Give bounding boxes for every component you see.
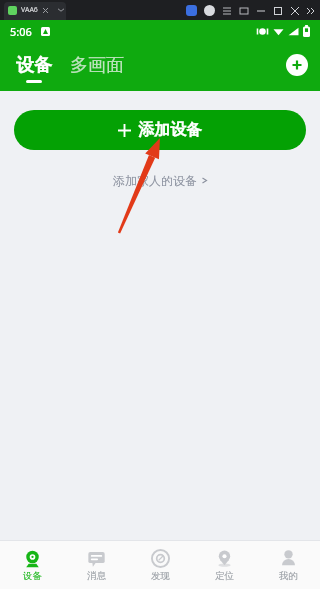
button[interactable]: 设备 [16,54,52,83]
staticText: 设备 [23,570,42,582]
button[interactable]: 消息 [64,541,128,589]
button[interactable]: 添加设备 [14,110,306,150]
staticText: 我的 [279,570,298,582]
staticText: 设备 [16,54,52,77]
button[interactable]: 多画面 [70,54,124,83]
staticText: 添加家人的设备 [113,173,197,188]
staticText: 发现 [151,570,170,582]
button[interactable]: 设备 [0,541,64,589]
staticText: 消息 [87,570,106,582]
staticText: 定位 [215,570,234,582]
staticText: 添加设备 [138,120,202,140]
staticText: 多画面 [70,54,124,77]
button[interactable]: 添加家人的设备 [107,170,214,191]
button[interactable]: 定位 [192,541,256,589]
staticText: VAA6 [21,5,38,15]
staticText: 5:06 [10,24,32,39]
button[interactable]: 发现 [128,541,192,589]
button[interactable]: Add [286,54,308,76]
button[interactable]: 我的 [256,541,320,589]
